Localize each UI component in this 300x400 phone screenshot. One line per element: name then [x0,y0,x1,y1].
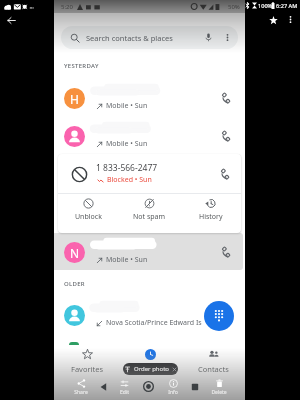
button[interactable]: Mobile • Sun [54,117,245,155]
staticText: 5:20 [61,3,73,11]
button[interactable]: History [180,193,241,232]
button[interactable]: Info [162,379,184,396]
button[interactable]: Call [216,126,236,146]
button[interactable]: Favorites [55,345,119,375]
button[interactable]: Order photo [123,363,178,375]
button[interactable]: 1 833-566-2477 [58,154,241,193]
staticText: Nova Scotia/Prince Edward Is [106,318,202,328]
staticText: N [70,245,80,261]
button[interactable]: Contacts [181,345,245,375]
staticText: Mobile • Sun [106,101,148,111]
staticText: Search contacts & places [86,33,173,43]
staticText: Blocked • Sun [107,175,152,185]
button[interactable]: Call [215,164,235,184]
staticText: Order photo [134,365,169,373]
button[interactable]: H [54,79,245,117]
staticText: Favorites [71,364,104,374]
staticText: 100% [258,2,273,10]
button[interactable]: More options [282,11,299,28]
button[interactable]: Call [216,242,236,262]
button[interactable]: Recent apps [191,383,199,391]
button[interactable]: Call [216,88,236,108]
staticText: 6:27 AM [276,2,298,10]
button[interactable]: Delete [208,379,230,396]
staticText: Mobile • Sun [106,255,148,265]
staticText: Info [168,389,178,396]
button[interactable]: Nova Scotia/Prince Edward Is [54,296,245,334]
button[interactable]: Home [143,381,154,392]
staticText: Contacts [198,364,229,374]
button[interactable]: Edit [113,379,135,396]
staticText: Share [74,389,88,396]
staticText: 50% [228,3,240,11]
staticText: 1 833-566-2477 [96,162,158,174]
staticText: Not spam [133,212,166,222]
button[interactable]: Favorite [264,11,283,30]
staticText: Delete [211,389,227,396]
staticText: History [199,212,223,222]
staticText: OLDER [64,280,85,288]
staticText: YESTERDAY [64,62,99,70]
button[interactable]: Share [70,379,92,396]
button[interactable]: Search contacts & places [61,26,238,49]
button[interactable]: Recents [118,345,182,375]
button[interactable]: Open dial pad [204,301,234,331]
button[interactable]: Call [216,305,236,325]
button[interactable]: Back [99,382,109,392]
button[interactable]: Back [2,11,20,29]
button[interactable]: N [54,233,245,271]
button[interactable]: Not spam [119,193,180,232]
staticText: Edit [120,389,129,396]
staticText: Unblock [75,212,102,222]
staticText: H [70,91,79,107]
staticText: Mobile • Sun [106,139,148,149]
button[interactable]: Unblock [58,193,119,232]
